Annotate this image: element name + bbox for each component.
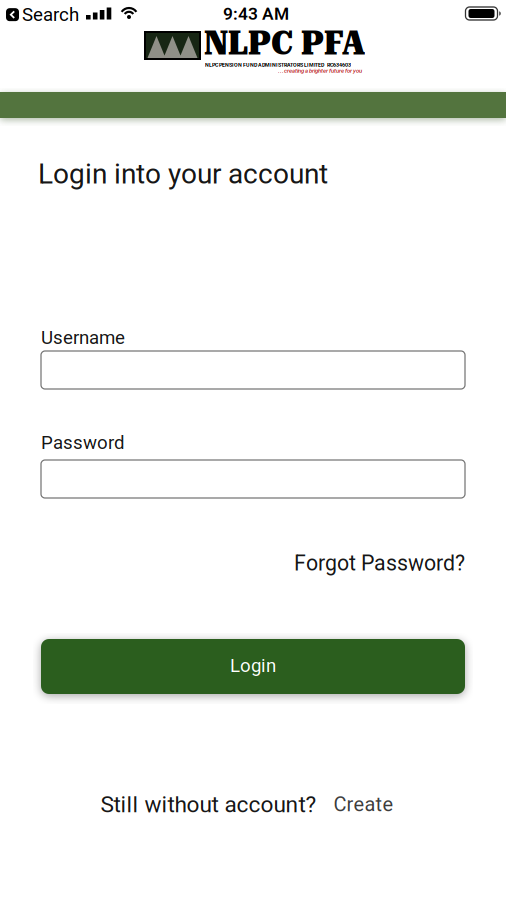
button[interactable]: Forgot Password? — [294, 551, 465, 575]
button[interactable]: Login — [41, 639, 465, 694]
staticText: Create — [333, 793, 393, 816]
staticText: ...creating a brighter future for you — [278, 67, 362, 74]
staticText: Still without account? — [100, 791, 316, 817]
staticText: Forgot Password? — [294, 551, 465, 575]
staticText: Username — [41, 327, 125, 348]
staticText: Password — [41, 432, 125, 453]
button[interactable]: Back to Search — [6, 4, 79, 25]
staticText: NLPC PFA — [204, 22, 365, 63]
staticText: Search — [22, 4, 79, 25]
button[interactable]: Create — [333, 793, 393, 816]
staticText: Login — [230, 655, 276, 676]
staticText: 9:43 AM — [223, 4, 289, 24]
staticText: NLPC PENSION FUND ADMINISTRATORS LIMITED… — [205, 62, 351, 68]
staticText: Login into your account — [38, 158, 328, 190]
